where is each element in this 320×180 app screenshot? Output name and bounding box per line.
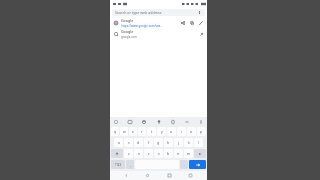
staticText: g (157, 140, 160, 145)
staticText: t (151, 129, 153, 134)
button[interactable]: e (129, 127, 137, 136)
staticText: ?123 (115, 163, 122, 167)
button[interactable]: j (174, 138, 183, 147)
staticText: n (177, 151, 180, 156)
staticText: o (190, 129, 193, 134)
button[interactable]: l (194, 138, 203, 147)
button[interactable]: f (144, 138, 153, 147)
staticText: w (123, 129, 126, 134)
button[interactable]: Insert suggestion (197, 30, 205, 38)
button[interactable]: t (147, 127, 156, 136)
button[interactable]: Shift (111, 149, 123, 158)
button[interactable]: v (154, 149, 163, 158)
button[interactable]: b (164, 149, 173, 158)
button[interactable]: Share (178, 18, 187, 27)
button[interactable]: Google search (112, 118, 120, 126)
button[interactable]: q (111, 127, 119, 136)
button[interactable]: Recents (165, 171, 174, 180)
staticText: y (161, 129, 163, 134)
staticText: z (128, 151, 130, 156)
button[interactable]: Home (143, 171, 152, 180)
button[interactable]: Voice search (197, 10, 202, 15)
button[interactable]: Edit (196, 18, 205, 27)
button[interactable]: m (184, 149, 193, 158)
button[interactable]: d (134, 138, 143, 147)
staticText: , (130, 163, 131, 167)
button[interactable]: x (134, 149, 143, 158)
staticText: Google (121, 29, 134, 34)
button[interactable]: w (120, 127, 128, 136)
button[interactable]: u (167, 127, 176, 136)
button[interactable]: g (154, 138, 163, 147)
staticText: Search or type web address (115, 10, 162, 15)
button[interactable]: Stickers (155, 118, 163, 126)
button[interactable]: Copy (187, 18, 196, 27)
staticText: https://www.google.com/sea... (121, 24, 163, 28)
staticText: v (158, 151, 160, 156)
staticText: q (114, 129, 117, 134)
staticText: b (167, 151, 170, 156)
button[interactable]: Settings (197, 118, 205, 126)
button[interactable]: o (187, 127, 196, 136)
button[interactable]: z (124, 149, 133, 158)
button[interactable]: r (138, 127, 146, 136)
staticText: f (148, 140, 150, 145)
button[interactable]: , (126, 160, 134, 169)
button[interactable]: More (183, 118, 191, 126)
button[interactable]: h (164, 138, 173, 147)
staticText: google.com (121, 35, 138, 39)
staticText: m (187, 151, 191, 156)
staticText: i (181, 129, 182, 134)
button[interactable]: Google (110, 28, 207, 39)
staticText: k (188, 140, 190, 145)
button[interactable]: Search or type web address (112, 9, 205, 16)
button[interactable]: Backspace (194, 149, 206, 158)
button[interactable]: y (157, 127, 166, 136)
button[interactable]: p (197, 127, 206, 136)
button[interactable]: s (124, 138, 133, 147)
button[interactable]: Google (110, 17, 207, 28)
staticText: u (170, 129, 173, 134)
staticText: a (118, 140, 120, 145)
button[interactable]: GIF (126, 118, 134, 126)
button[interactable]: i (177, 127, 186, 136)
button[interactable]: ?123 (111, 160, 125, 169)
staticText: c (148, 151, 150, 156)
button[interactable]: Back (122, 171, 131, 180)
staticText: Google (121, 18, 134, 23)
button[interactable]: Go (189, 160, 206, 169)
staticText: j (178, 140, 179, 145)
button[interactable]: a (114, 138, 123, 147)
staticText: h (167, 140, 170, 145)
staticText: . (184, 163, 185, 167)
staticText: e (132, 129, 134, 134)
staticText: r (141, 129, 143, 134)
staticText: d (137, 140, 140, 145)
button[interactable]: Tabs (186, 171, 195, 180)
button[interactable]: Clipboard (169, 118, 177, 126)
button[interactable]: k (184, 138, 193, 147)
staticText: l (198, 140, 199, 145)
button[interactable]: n (174, 149, 183, 158)
staticText: s (128, 140, 130, 145)
staticText: x (138, 151, 140, 156)
button[interactable]: Emoji (140, 118, 148, 126)
staticText: p (200, 129, 203, 134)
button[interactable]: c (144, 149, 153, 158)
